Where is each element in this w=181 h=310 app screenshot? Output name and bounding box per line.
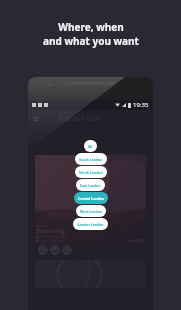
button[interactable]: Open navigation menu [30, 113, 42, 125]
staticText: The Lion King [36, 228, 65, 234]
staticText: All [88, 144, 93, 149]
button[interactable]: Central London [74, 192, 108, 204]
staticText: Where, when [58, 20, 124, 34]
staticText: Tue, 12 September [39, 235, 68, 239]
staticText: North London [79, 170, 103, 175]
button[interactable]: Musical [35, 155, 146, 245]
staticText: South London [79, 157, 103, 162]
staticText: West London [80, 209, 102, 214]
button[interactable]: Attendee [50, 245, 60, 255]
button[interactable]: All [84, 140, 97, 152]
button[interactable]: East London [76, 179, 105, 191]
button[interactable]: Greater London [73, 218, 108, 230]
staticText: Musical [36, 224, 48, 228]
staticText: from £55 [128, 238, 144, 243]
staticText: Central London [78, 196, 104, 201]
button[interactable]: South London [75, 153, 107, 165]
button[interactable]: Attendee [38, 245, 48, 255]
staticText: Greater London [77, 222, 104, 227]
staticText: and what you want [43, 34, 139, 48]
staticText: Lyceum Theatre [39, 239, 63, 243]
staticText: Places I Love [59, 114, 102, 124]
staticText: East London [80, 183, 101, 188]
button[interactable]: West London [76, 205, 106, 217]
staticText: 19:35 [133, 101, 149, 109]
button[interactable]: Attendee [62, 245, 72, 255]
button[interactable]: North London [75, 166, 107, 178]
